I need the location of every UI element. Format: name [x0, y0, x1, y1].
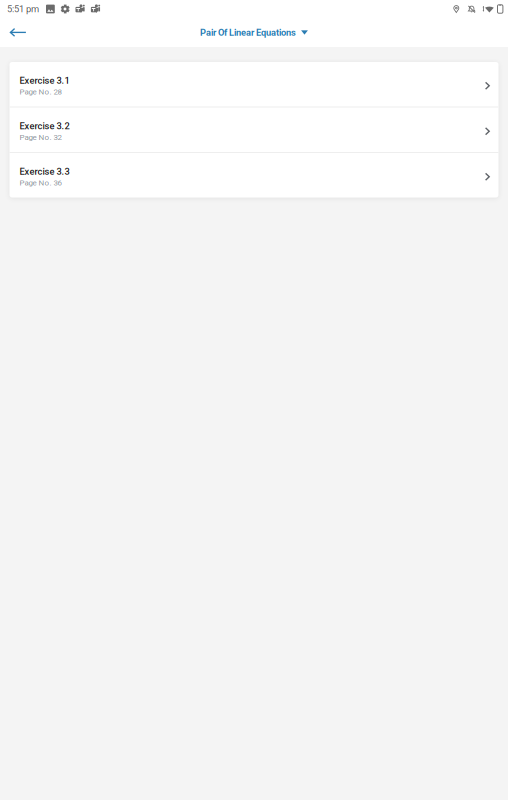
staticText: Page No. 28 [19, 87, 61, 96]
staticText: Exercise 3.1 [19, 75, 69, 86]
button[interactable]: Exercise 3.3 [9, 153, 498, 197]
staticText: Exercise 3.2 [19, 121, 69, 131]
staticText: Page No. 32 [19, 132, 61, 142]
button[interactable]: Exercise 3.1 [9, 62, 498, 106]
staticText: Pair Of Linear Equations [200, 27, 296, 38]
button[interactable]: Pair Of Linear Equations [194, 18, 314, 47]
staticText: Exercise 3.3 [19, 166, 69, 177]
button[interactable]: Exercise 3.2 [9, 107, 498, 152]
button[interactable]: Back [0, 18, 36, 47]
staticText: 5:51 pm [7, 3, 39, 14]
staticText: Page No. 36 [19, 178, 61, 187]
